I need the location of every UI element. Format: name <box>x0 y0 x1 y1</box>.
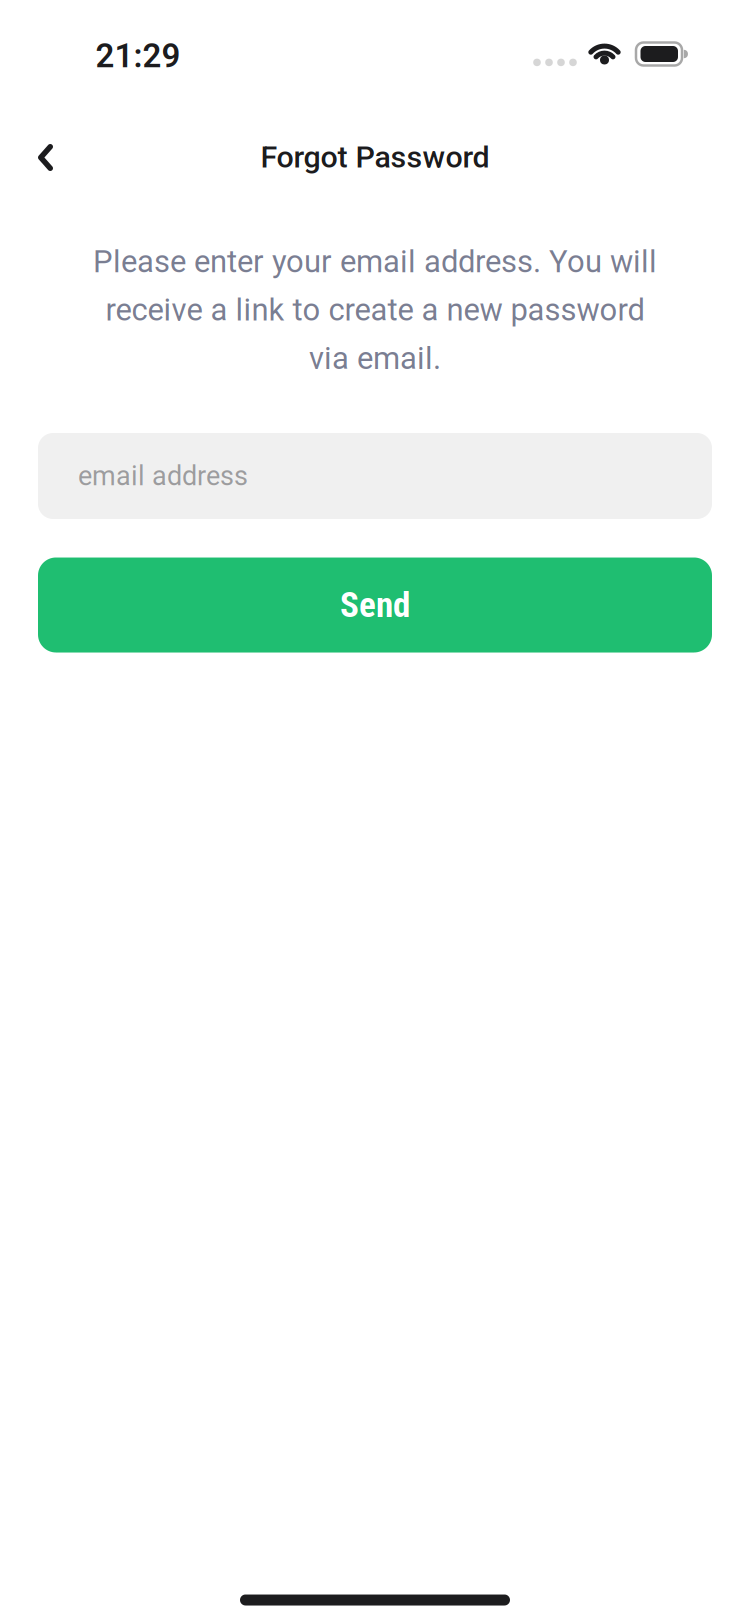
staticText: Forgot Password <box>260 139 489 175</box>
staticText: Send <box>340 584 410 626</box>
staticText: 21:29 <box>95 37 180 75</box>
staticText: receive a link to create a new password <box>105 292 644 328</box>
button[interactable]: email address <box>38 433 712 519</box>
button[interactable]: Send <box>38 557 712 652</box>
button[interactable]: Back <box>8 117 88 197</box>
staticText: via email. <box>309 340 441 376</box>
staticText: Please enter your email address. You wil… <box>93 243 657 280</box>
staticText: email address <box>78 460 248 492</box>
